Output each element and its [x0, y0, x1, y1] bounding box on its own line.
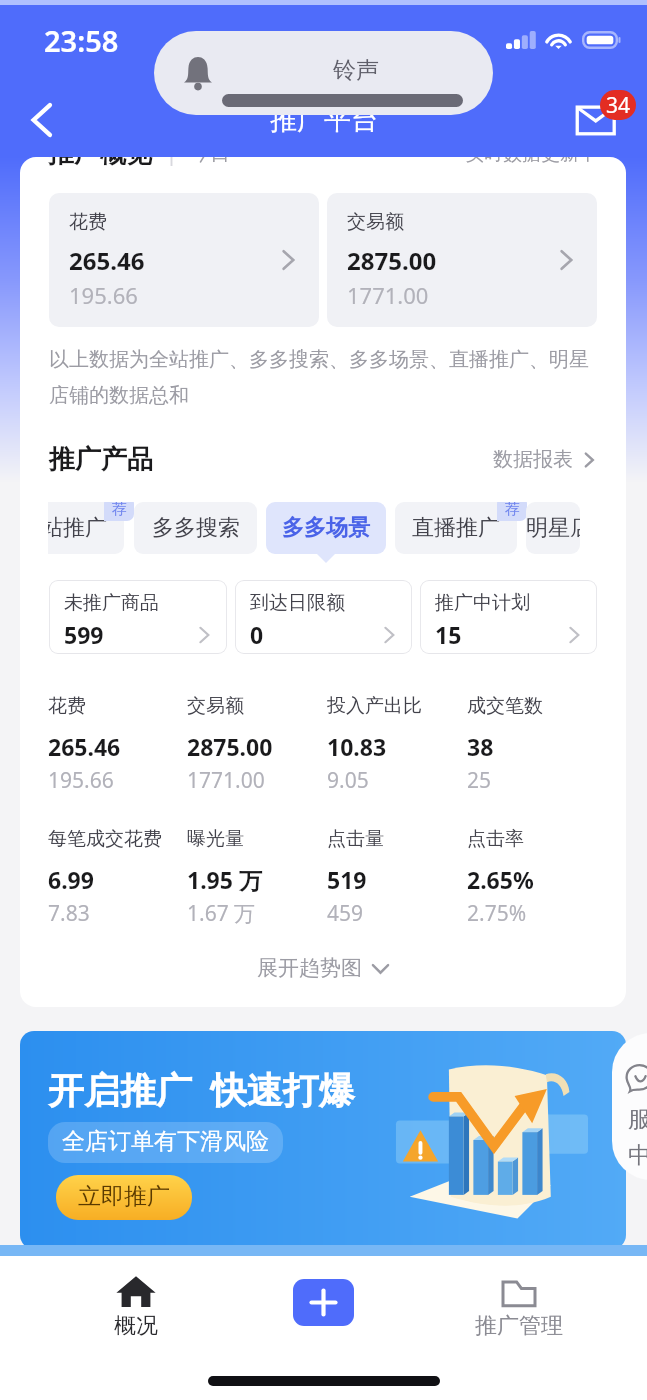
staticText: 25: [467, 766, 492, 795]
staticText: 1.67 万: [187, 899, 256, 928]
button[interactable]: 交易额: [327, 193, 597, 327]
staticText: 推广平台: [270, 103, 378, 137]
staticText: 2.65%: [467, 864, 534, 895]
staticText: 195.66: [48, 766, 114, 795]
staticText: 实时数据更新中: [465, 157, 598, 166]
staticText: 未推广商品: [64, 591, 159, 615]
staticText: 265.46: [69, 244, 145, 277]
staticText: 成交笔数: [467, 694, 543, 718]
button[interactable]: 铃声: [154, 31, 493, 115]
staticText: 立即推广: [78, 1182, 170, 1211]
staticText: 多多搜索: [152, 514, 240, 542]
staticText: 花费: [69, 210, 107, 234]
staticText: 每笔成交花费: [48, 827, 162, 851]
button[interactable]: Add: [293, 1279, 354, 1326]
button[interactable]: 展开趋势图: [20, 955, 626, 981]
staticText: 以上数据为全站推广、多多搜索、多多场景、直播推广、明星店铺的数据总和: [49, 347, 600, 408]
staticText: 明星店铺: [526, 514, 580, 542]
button[interactable]: 全站推广: [48, 502, 124, 554]
staticText: 6.99: [48, 864, 94, 895]
staticText: 服: [628, 1105, 647, 1134]
staticText: 2.75%: [467, 899, 527, 928]
staticText: 推广中计划: [435, 591, 530, 615]
staticText: 点击量: [327, 827, 384, 851]
button[interactable]: 未推广商品: [49, 580, 227, 654]
staticText: 1771.00: [187, 766, 265, 795]
staticText: |: [166, 157, 178, 167]
staticText: 2875.00: [187, 731, 273, 762]
staticText: 519: [327, 864, 367, 895]
staticText: 15: [435, 619, 462, 650]
staticText: 195.66: [69, 280, 138, 310]
staticText: 1.95 万: [187, 864, 262, 895]
staticText: 概况: [114, 1312, 158, 1340]
button[interactable]: Messages: [570, 87, 636, 153]
staticText: 推广概览: [48, 157, 152, 170]
staticText: 2875.00: [347, 244, 437, 277]
staticText: 铃声: [333, 56, 379, 85]
button[interactable]: 数据报表: [493, 443, 597, 476]
staticText: 全站推广: [48, 514, 107, 542]
button[interactable]: 推广管理: [461, 1270, 577, 1344]
staticText: 曝光量: [187, 827, 244, 851]
staticText: 1771.00: [347, 280, 429, 310]
button[interactable]: 明星店铺: [526, 502, 580, 554]
staticText: 0: [250, 619, 264, 650]
button[interactable]: 开启推广 快速打爆: [20, 1031, 626, 1249]
button[interactable]: 多多场景: [266, 502, 386, 554]
staticText: 多多场景: [282, 514, 370, 542]
staticText: 开启推广 快速打爆: [48, 1065, 355, 1114]
staticText: 交易额: [187, 694, 244, 718]
staticText: 直播推广: [412, 514, 500, 542]
staticText: 到达日限额: [250, 591, 345, 615]
button[interactable]: 多多搜索: [134, 502, 257, 554]
button[interactable]: 花费: [49, 193, 319, 327]
button[interactable]: 到达日限额: [235, 580, 412, 654]
staticText: 推广产品: [49, 443, 153, 476]
button[interactable]: 直播推广: [395, 502, 517, 554]
staticText: 265.46: [48, 731, 121, 762]
staticText: 38: [467, 731, 494, 762]
staticText: 点击率: [467, 827, 524, 851]
button[interactable]: Service center: [612, 1033, 647, 1180]
staticText: 荐: [505, 502, 520, 519]
staticText: 中: [628, 1141, 647, 1170]
staticText: 10.83: [327, 731, 387, 762]
staticText: 599: [64, 619, 104, 650]
staticText: 花费: [48, 694, 86, 718]
button[interactable]: 立即推广: [56, 1175, 192, 1220]
staticText: 数据报表: [493, 447, 573, 472]
button[interactable]: 概况: [92, 1270, 180, 1344]
staticText: 荐: [112, 502, 127, 519]
staticText: 9.05: [327, 766, 369, 795]
button[interactable]: 推广中计划: [420, 580, 597, 654]
staticText: 全店订单有下滑风险: [62, 1127, 269, 1156]
staticText: 今日: [190, 157, 230, 166]
staticText: 推广管理: [475, 1312, 563, 1340]
staticText: 459: [327, 899, 364, 928]
staticText: 展开趋势图: [257, 955, 362, 981]
staticText: 23:58: [44, 21, 119, 60]
staticText: 34: [606, 91, 631, 120]
button[interactable]: Back: [12, 90, 72, 150]
staticText: 7.83: [48, 899, 90, 928]
staticText: 投入产出比: [327, 694, 422, 718]
staticText: 交易额: [347, 210, 404, 234]
